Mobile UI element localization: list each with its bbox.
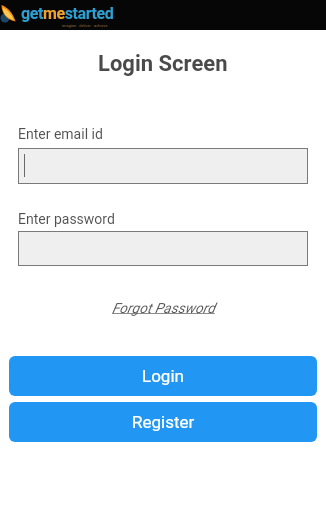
staticText: Login xyxy=(142,366,184,386)
staticText: Register xyxy=(132,412,195,432)
staticText: getmestarted xyxy=(21,4,114,23)
button[interactable]: Login xyxy=(9,356,317,396)
button[interactable]: Register xyxy=(9,402,317,442)
button[interactable]: Forgot Password xyxy=(112,300,215,316)
staticText: Login Screen xyxy=(98,51,228,77)
staticText: Enter password xyxy=(18,211,115,227)
staticText: imagine . deliver . achieve xyxy=(62,23,108,28)
button[interactable] xyxy=(18,231,308,266)
staticText: Enter email id xyxy=(18,126,103,142)
button[interactable] xyxy=(18,148,308,184)
